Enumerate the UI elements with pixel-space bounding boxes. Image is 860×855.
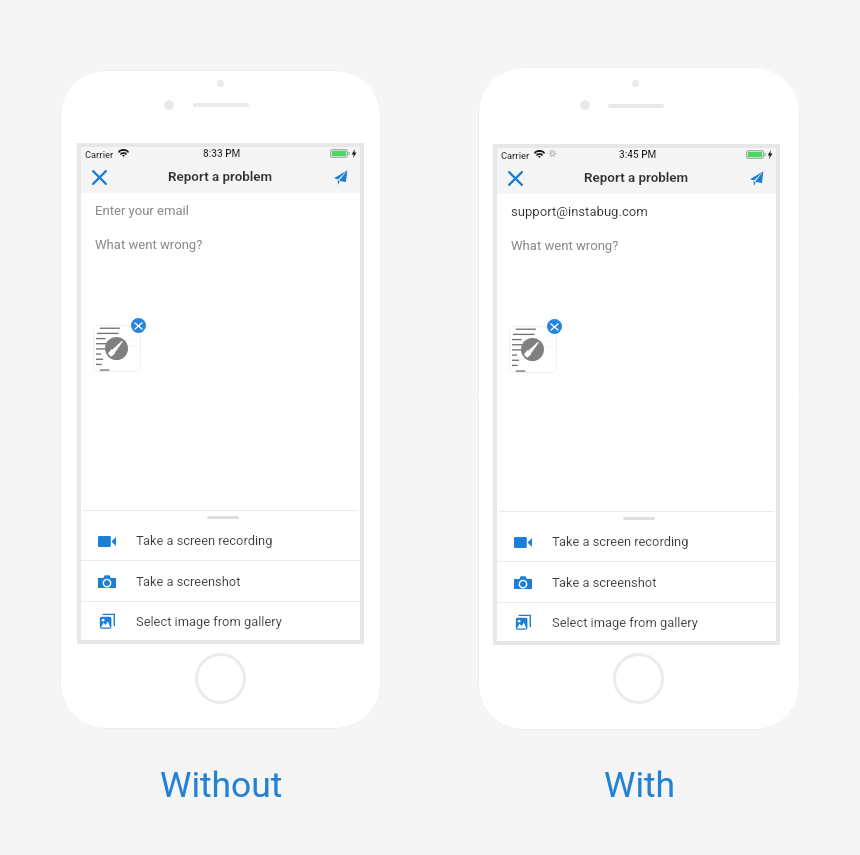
staticText: Carrier [85, 149, 114, 160]
button[interactable]: Send [743, 164, 771, 192]
staticText: Report a problem [168, 169, 273, 185]
staticText: Take a screen recording [552, 534, 689, 549]
button[interactable]: Remove attachment [131, 318, 146, 333]
button[interactable]: Send [327, 163, 355, 191]
button[interactable]: Take a screen recording [497, 522, 776, 561]
staticText: Select image from gallery [136, 614, 282, 629]
button[interactable]: Select image from gallery [497, 603, 776, 641]
staticText: What went wrong? [511, 238, 619, 253]
button[interactable]: Select image from gallery [81, 602, 360, 640]
button[interactable]: Close [85, 163, 113, 191]
staticText: 3:45 PM [619, 149, 657, 161]
staticText: support@instabug.com [511, 204, 648, 219]
staticText: What went wrong? [95, 237, 203, 252]
button[interactable]: Remove attachment [547, 319, 562, 334]
staticText: Without [160, 764, 283, 805]
button[interactable]: Take a screen recording [81, 521, 360, 560]
button[interactable]: Close [501, 164, 529, 192]
staticText: Take a screenshot [136, 574, 241, 589]
staticText: With [604, 764, 676, 805]
staticText: Take a screen recording [136, 533, 273, 548]
staticText: Take a screenshot [552, 575, 657, 590]
staticText: Report a problem [584, 170, 689, 186]
staticText: Select image from gallery [552, 615, 698, 630]
button[interactable]: Take a screenshot [497, 562, 776, 602]
button[interactable]: Take a screenshot [81, 561, 360, 601]
staticText: Carrier [501, 150, 530, 161]
staticText: 8:33 PM [203, 148, 241, 160]
staticText: Enter your email [95, 203, 189, 218]
